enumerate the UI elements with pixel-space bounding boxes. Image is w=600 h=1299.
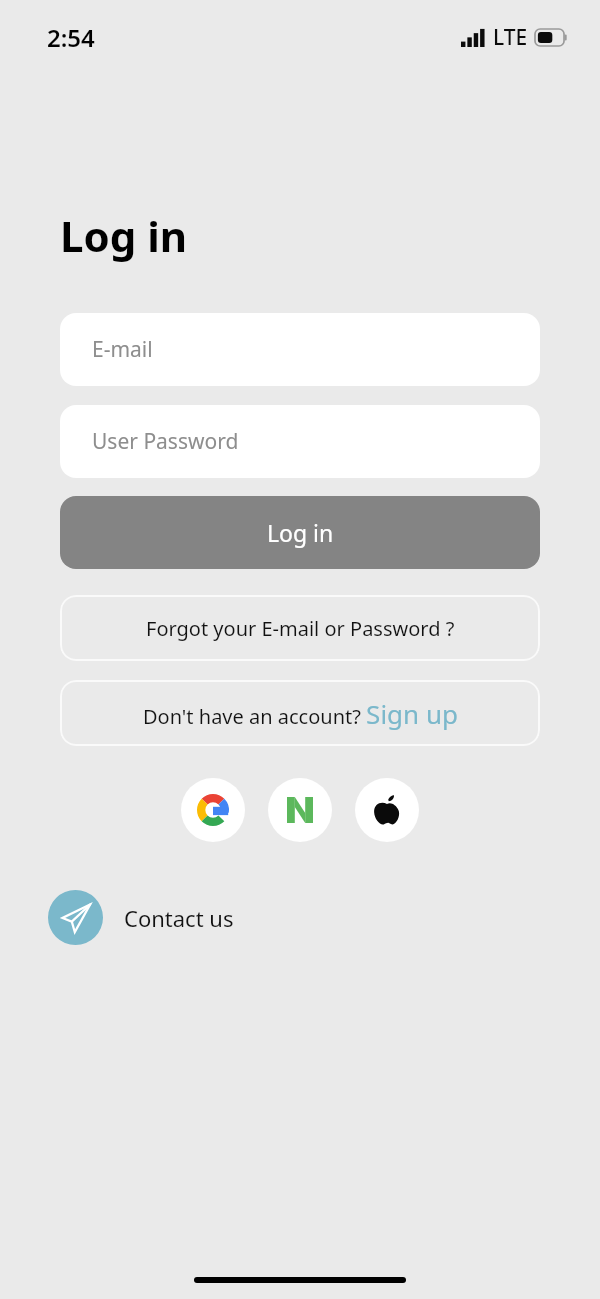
button[interactable]: User Password <box>60 405 540 478</box>
button[interactable]: Contact us <box>48 890 234 945</box>
button[interactable]: Log in <box>60 496 540 569</box>
staticText: Don't have an account? Sign up <box>143 696 458 731</box>
staticText: LTE <box>493 23 528 52</box>
button[interactable]: E-mail <box>60 313 540 386</box>
staticText: Contact us <box>124 903 234 933</box>
button[interactable]: Sign in with Apple <box>355 778 419 842</box>
staticText: Forgot your E-mail or Password ? <box>146 615 455 642</box>
staticText: 2:54 <box>47 21 95 54</box>
button[interactable]: Don't have an account? Sign up <box>60 680 540 746</box>
staticText: User Password <box>92 427 239 456</box>
button[interactable]: Sign in with Google <box>181 778 245 842</box>
staticText: Log in <box>267 517 334 548</box>
staticText: Log in <box>60 207 188 264</box>
button[interactable]: Sign in with Naver <box>268 778 332 842</box>
staticText: E-mail <box>92 335 153 364</box>
button[interactable]: Forgot your E-mail or Password ? <box>60 595 540 661</box>
